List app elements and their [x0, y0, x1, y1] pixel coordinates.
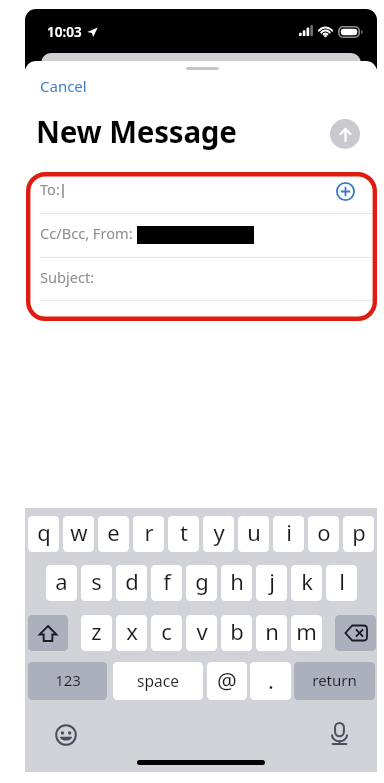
button[interactable]: r — [133, 516, 164, 552]
staticText: g — [195, 566, 209, 596]
button[interactable]: k — [291, 565, 322, 601]
button[interactable]: h — [221, 565, 252, 601]
button[interactable]: Emoji keyboard — [51, 720, 81, 750]
button[interactable]: Backspace — [335, 615, 376, 651]
button[interactable]: g — [186, 565, 217, 601]
button[interactable]: b — [221, 615, 252, 651]
button[interactable]: v — [186, 615, 217, 651]
button[interactable]: y — [203, 516, 234, 552]
staticText: 10:03 — [47, 23, 82, 41]
staticText: x — [126, 616, 138, 646]
button[interactable]: . — [250, 662, 291, 700]
button[interactable]: m — [291, 615, 322, 651]
button[interactable]: z — [81, 615, 112, 651]
button[interactable]: a — [46, 565, 77, 601]
button[interactable]: Subject: — [25, 257, 377, 301]
staticText: d — [125, 566, 139, 596]
staticText: b — [230, 616, 244, 646]
staticText: m — [296, 616, 317, 646]
button[interactable]: t — [168, 516, 199, 552]
staticText: r — [144, 517, 154, 547]
button[interactable]: w — [63, 516, 94, 552]
staticText: q — [37, 517, 51, 547]
staticText: v — [196, 616, 208, 646]
button[interactable]: o — [308, 516, 339, 552]
staticText: p — [352, 517, 366, 547]
staticText: Cc/Bcc, From: — [40, 223, 133, 243]
button[interactable]: Send — [330, 119, 360, 149]
staticText: h — [230, 566, 244, 596]
staticText: z — [91, 616, 102, 646]
staticText: c — [161, 616, 172, 646]
staticText: Subject: — [40, 267, 95, 287]
staticText: j — [269, 566, 275, 596]
staticText: . — [268, 665, 274, 695]
button[interactable]: 123 — [28, 662, 107, 700]
button[interactable]: n — [256, 615, 287, 651]
staticText: i — [286, 517, 292, 547]
button[interactable]: q — [28, 516, 59, 552]
staticText: t — [180, 517, 188, 547]
button[interactable]: To: — [25, 169, 377, 213]
staticText: e — [107, 517, 120, 547]
staticText: 123 — [55, 670, 81, 690]
staticText: Cancel — [40, 76, 87, 96]
button[interactable]: Cc/Bcc, From: — [25, 213, 377, 257]
button[interactable]: Add contact — [331, 177, 360, 206]
button[interactable]: j — [256, 565, 287, 601]
button[interactable]: Shift — [28, 615, 68, 651]
staticText: l — [339, 566, 345, 596]
staticText: f — [163, 566, 171, 596]
button[interactable]: d — [116, 565, 147, 601]
staticText: To: — [40, 179, 60, 199]
button[interactable]: u — [238, 516, 269, 552]
button[interactable]: e — [98, 516, 129, 552]
button[interactable]: x — [116, 615, 147, 651]
staticText: k — [301, 566, 313, 596]
button[interactable]: s — [81, 565, 112, 601]
button[interactable]: return — [294, 662, 375, 700]
staticText: y — [213, 517, 225, 547]
staticText: a — [55, 566, 68, 596]
button[interactable]: l — [326, 565, 357, 601]
staticText: @ — [217, 665, 237, 695]
button[interactable]: Cancel — [32, 71, 95, 101]
staticText: n — [265, 616, 279, 646]
button[interactable]: f — [151, 565, 182, 601]
staticText: u — [247, 517, 261, 547]
staticText: New Message — [36, 111, 237, 151]
staticText: space — [137, 670, 179, 691]
staticText: return — [312, 670, 357, 690]
staticText: s — [91, 566, 102, 596]
staticText: o — [317, 517, 331, 547]
button[interactable]: i — [273, 516, 304, 552]
button[interactable]: Dictation — [324, 718, 354, 748]
button[interactable]: c — [151, 615, 182, 651]
button[interactable]: p — [343, 516, 374, 552]
staticText: w — [70, 517, 88, 547]
button[interactable]: @ — [207, 662, 247, 700]
button[interactable]: space — [113, 662, 203, 700]
